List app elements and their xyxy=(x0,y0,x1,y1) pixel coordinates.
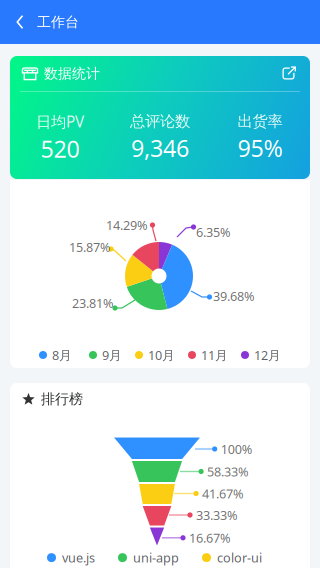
staticText: 8月 xyxy=(52,346,72,364)
button[interactable]: Back xyxy=(0,0,37,44)
staticText: 11月 xyxy=(201,346,228,364)
staticText: 41.67% xyxy=(202,485,244,502)
staticText: 39.68% xyxy=(213,287,255,305)
staticText: 100% xyxy=(221,440,253,458)
staticText: 14.29% xyxy=(106,216,148,234)
staticText: 12月 xyxy=(254,346,281,364)
staticText: 520 xyxy=(40,133,79,165)
staticText: 15.87% xyxy=(69,238,111,256)
staticText: color-ui xyxy=(217,549,262,566)
staticText: 9月 xyxy=(102,346,122,364)
staticText: 日均PV xyxy=(36,111,84,132)
staticText: 95% xyxy=(237,132,282,164)
staticText: vue.js xyxy=(62,549,95,566)
staticText: uni-app xyxy=(133,549,179,566)
staticText: 16.67% xyxy=(189,529,231,546)
staticText: 出货率 xyxy=(237,112,282,131)
staticText: 23.81% xyxy=(72,294,114,312)
staticText: 58.33% xyxy=(207,463,249,480)
staticText: 10月 xyxy=(148,346,175,364)
staticText: 排行榜 xyxy=(41,390,83,408)
staticText: 总评论数 xyxy=(130,112,190,131)
staticText: 工作台 xyxy=(37,13,79,31)
staticText: 33.33% xyxy=(196,506,238,524)
staticText: 9,346 xyxy=(131,132,189,164)
staticText: 数据统计 xyxy=(44,65,100,82)
staticText: 6.35% xyxy=(196,223,231,241)
button[interactable]: Share xyxy=(277,62,300,85)
